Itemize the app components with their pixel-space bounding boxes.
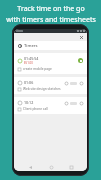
staticText: Web site design sketches: [23, 87, 61, 91]
staticText: 01:06: [24, 80, 34, 85]
button[interactable]: Duration: [70, 82, 77, 85]
button[interactable]: Back: [26, 163, 34, 171]
button[interactable]: Timers: [14, 41, 87, 50]
staticText: Track time on the go: [17, 4, 85, 14]
staticText: Timers: [24, 43, 38, 49]
button[interactable]: Duration: [70, 102, 77, 105]
button[interactable]: Close: [78, 34, 84, 40]
staticText: create mobile page: [23, 67, 52, 71]
button[interactable]: Home: [47, 163, 55, 171]
button[interactable]: Client phone call: [18, 107, 83, 111]
staticText: with timers and timesheets: [6, 15, 96, 25]
button[interactable]: 10:12: [14, 97, 87, 114]
button[interactable]: 01:45:54: [14, 53, 87, 74]
button[interactable]: Edit: [64, 81, 68, 85]
staticText: 10:12: [24, 100, 34, 105]
button[interactable]: create mobile page: [18, 67, 83, 71]
staticText: $51.00: [24, 61, 33, 65]
button[interactable]: Edit: [64, 101, 68, 105]
button[interactable]: 01:06: [14, 77, 87, 94]
button[interactable]: Web site design sketches: [18, 87, 83, 91]
staticText: 01:45:54: [24, 56, 39, 61]
button[interactable]: Recents: [67, 163, 75, 171]
button[interactable]: Start timer: [79, 81, 83, 85]
button[interactable]: Stop timer: [78, 58, 83, 63]
button[interactable]: Start timer: [79, 101, 83, 105]
staticText: Client phone call: [23, 107, 48, 111]
